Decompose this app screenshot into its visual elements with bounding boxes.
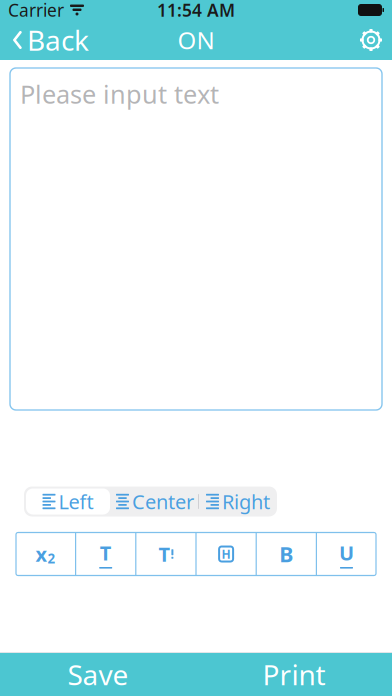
button[interactable]: Right bbox=[199, 486, 277, 516]
button[interactable]: Print bbox=[196, 653, 392, 696]
button[interactable]: Text size bbox=[76, 532, 135, 575]
staticText: x bbox=[35, 541, 47, 567]
staticText: ON bbox=[177, 24, 214, 56]
button[interactable]: Bold bbox=[257, 532, 316, 575]
button[interactable]: Subscript bbox=[16, 532, 75, 575]
staticText: T bbox=[100, 539, 112, 566]
staticText: 2 bbox=[47, 550, 55, 567]
staticText: Left bbox=[58, 488, 93, 515]
staticText: T bbox=[158, 541, 170, 567]
button[interactable]: Text height bbox=[136, 532, 195, 575]
staticText: Back bbox=[27, 21, 89, 59]
staticText: Carrier bbox=[8, 0, 64, 21]
button[interactable]: Underline bbox=[317, 532, 376, 575]
staticText: 11:54 AM bbox=[157, 0, 235, 21]
staticText: Center bbox=[132, 488, 194, 515]
button[interactable]: Settings bbox=[350, 20, 392, 60]
staticText: B bbox=[279, 540, 293, 568]
staticText: Please input text bbox=[20, 77, 219, 111]
button[interactable]: Center bbox=[112, 486, 198, 516]
staticText: Right bbox=[222, 488, 270, 515]
staticText: Save bbox=[67, 656, 128, 693]
button[interactable]: Frame bbox=[197, 532, 256, 575]
staticText: U bbox=[339, 539, 354, 566]
button[interactable]: Back bbox=[0, 20, 99, 60]
button[interactable]: Save bbox=[0, 653, 196, 696]
staticText: Print bbox=[262, 656, 325, 693]
button[interactable]: Left bbox=[24, 486, 112, 516]
button[interactable]: Please input text bbox=[10, 68, 382, 410]
staticText: H bbox=[222, 546, 231, 562]
